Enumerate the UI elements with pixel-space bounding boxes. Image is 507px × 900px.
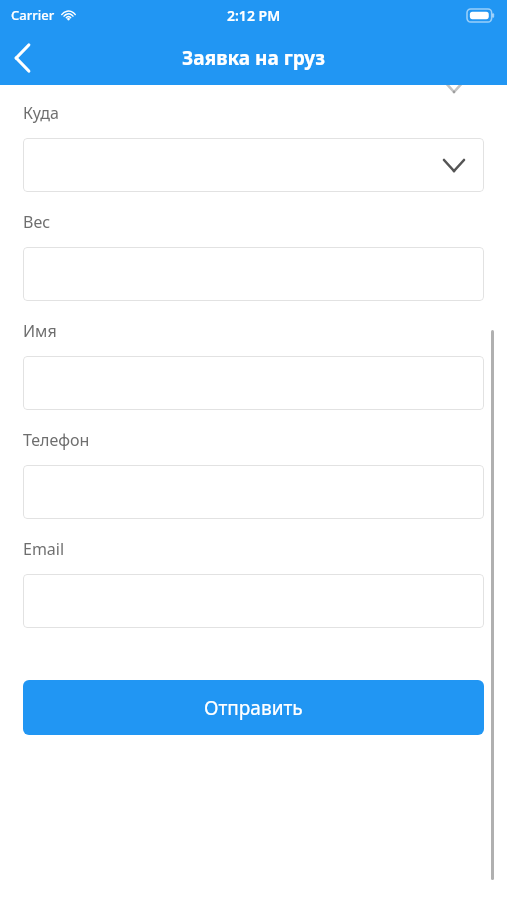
button[interactable] [23, 85, 484, 97]
staticText: Имя [23, 320, 57, 342]
button[interactable] [23, 574, 484, 628]
staticText: Куда [23, 102, 59, 124]
staticText: Email [23, 538, 65, 560]
button[interactable]: Back [0, 32, 52, 84]
button[interactable] [23, 247, 484, 301]
button[interactable] [23, 465, 484, 519]
staticText: Заявка на груз [182, 45, 325, 71]
staticText: Вес [23, 211, 51, 233]
staticText: Carrier [11, 6, 55, 24]
staticText: Телефон [23, 429, 90, 451]
staticText: Отправить [204, 695, 303, 721]
button[interactable] [23, 356, 484, 410]
button[interactable]: Отправить [23, 680, 484, 735]
staticText: 2:12 PM [227, 6, 281, 25]
button[interactable] [23, 138, 484, 192]
